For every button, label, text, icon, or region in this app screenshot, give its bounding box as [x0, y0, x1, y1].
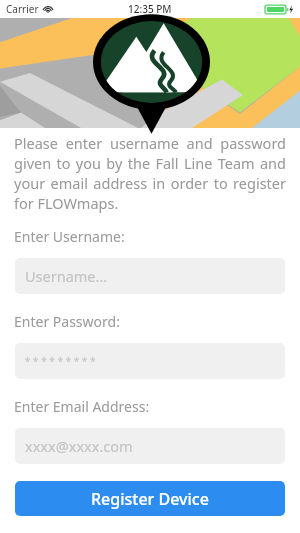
button[interactable]: xxxx@xxxx.com [15, 428, 285, 464]
staticText: Enter Email Address: [14, 397, 150, 416]
staticText: Enter Password: [14, 312, 120, 331]
staticText: Register Device [91, 488, 209, 510]
staticText: Carrier [6, 2, 39, 16]
button[interactable]: * * * * * * * * * [15, 343, 285, 379]
staticText: Enter Username: [14, 227, 125, 246]
staticText: xxxx@xxxx.com [25, 436, 133, 456]
button[interactable]: Register Device [15, 481, 285, 516]
button[interactable]: Username... [15, 258, 285, 294]
staticText: Username... [25, 266, 108, 286]
other: FLOWmaps logo on map [0, 18, 300, 128]
staticText: * * * * * * * * * [25, 354, 96, 368]
staticText: 12:35 PM [128, 2, 172, 16]
staticText: Please enter username and password given… [14, 133, 286, 213]
